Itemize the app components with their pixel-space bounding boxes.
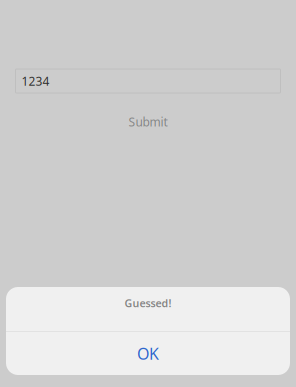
button[interactable]: OK xyxy=(6,332,290,375)
button[interactable]: Submit xyxy=(116,107,179,137)
staticText: Guessed! xyxy=(124,296,171,310)
staticText: Submit xyxy=(128,114,167,130)
staticText: 1234 xyxy=(21,73,49,89)
textField[interactable]: 1234 xyxy=(21,73,151,89)
staticText: OK xyxy=(137,343,159,364)
